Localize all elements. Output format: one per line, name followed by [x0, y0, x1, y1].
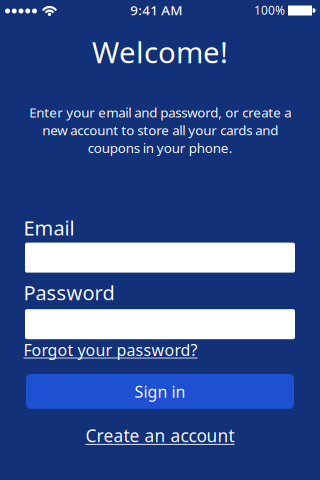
button[interactable]: Create an account: [85, 424, 234, 447]
staticText: Password: [23, 279, 114, 306]
button[interactable]: [25, 243, 295, 273]
staticText: 9:41 AM: [130, 1, 182, 19]
staticText: Email: [23, 215, 74, 241]
staticText: Create an account: [85, 424, 234, 447]
staticText: Welcome!: [92, 32, 228, 71]
staticText: Enter your email and password, or create…: [29, 103, 291, 157]
staticText: 100%: [254, 2, 285, 18]
button[interactable]: Forgot your password?: [23, 339, 197, 360]
button[interactable]: Sign in: [26, 374, 294, 409]
staticText: Forgot your password?: [23, 339, 197, 360]
staticText: Sign in: [134, 381, 185, 402]
button[interactable]: [25, 309, 295, 339]
